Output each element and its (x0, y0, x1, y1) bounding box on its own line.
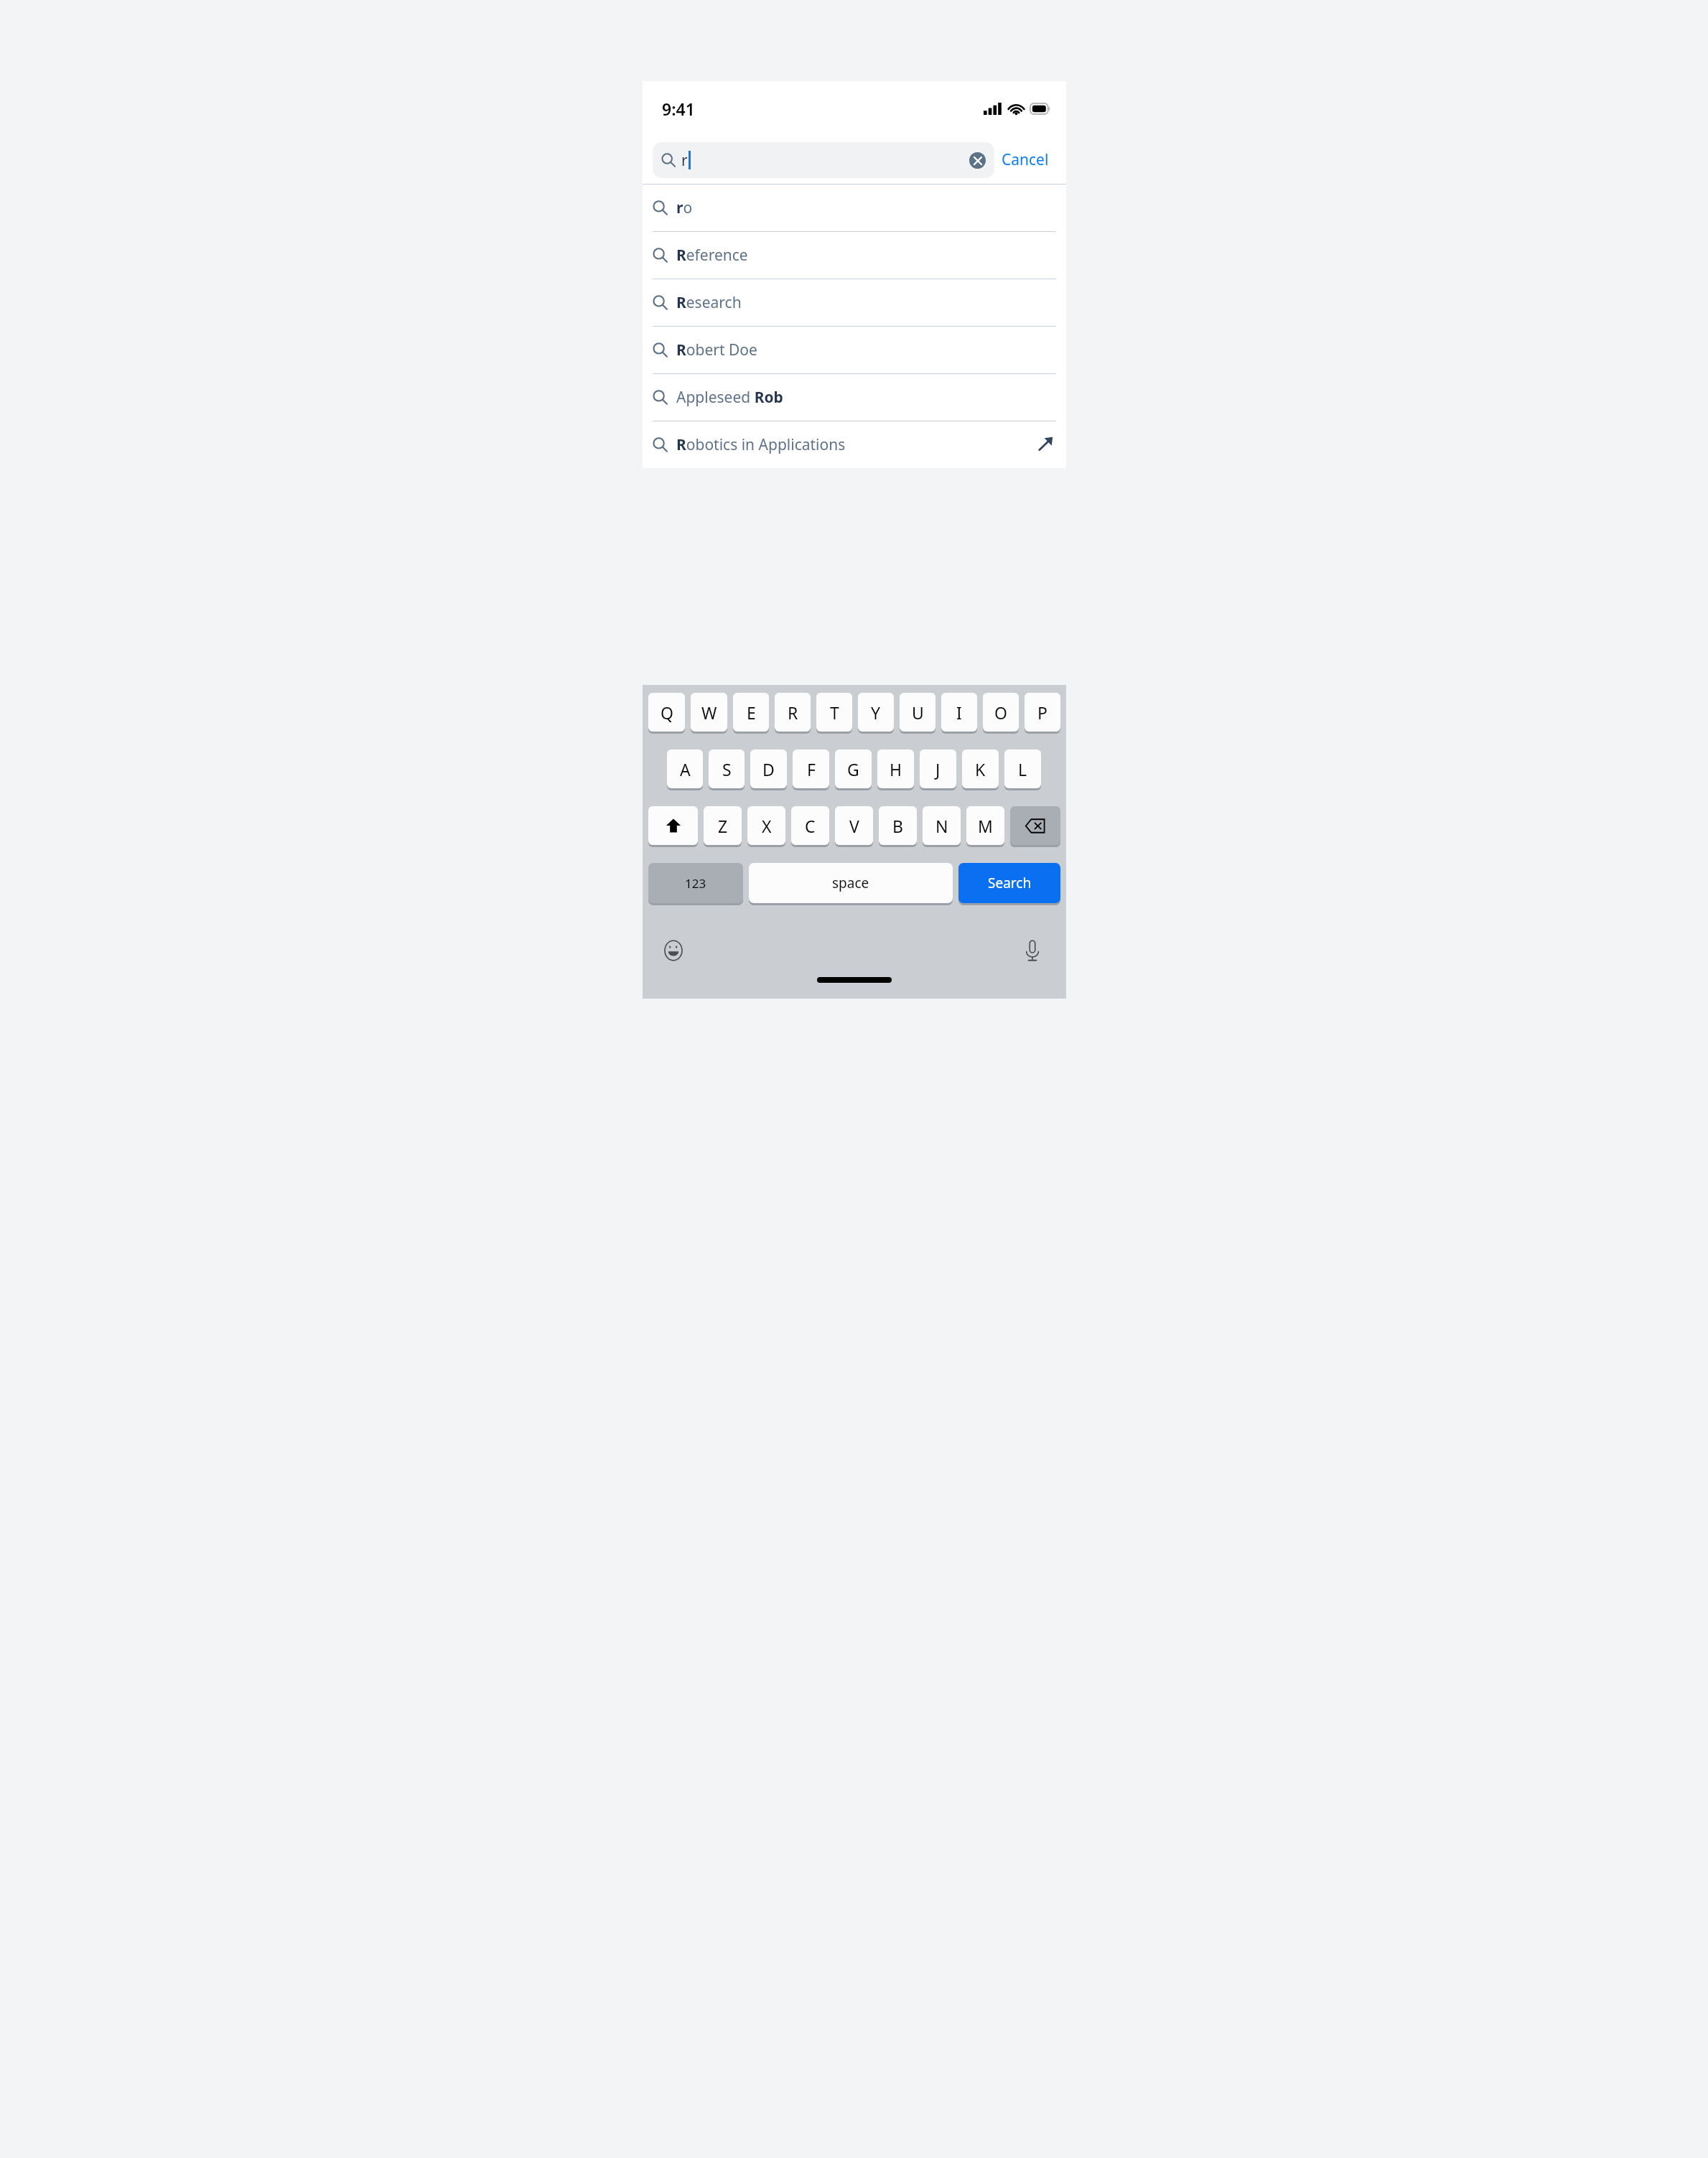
button[interactable]: Z (704, 806, 742, 845)
staticText: C (805, 815, 816, 837)
button[interactable]: E (733, 693, 769, 732)
button[interactable]: Dictate (1019, 937, 1046, 964)
staticText: S (722, 758, 732, 780)
button[interactable]: Research (643, 279, 1066, 326)
button[interactable]: C (791, 806, 829, 845)
staticText: Cancel (1002, 149, 1049, 170)
staticText: Appleseed Rob (676, 387, 783, 408)
button[interactable]: Search (958, 863, 1060, 903)
button[interactable]: O (983, 693, 1019, 732)
button[interactable]: A (667, 749, 703, 788)
button[interactable]: F (793, 749, 829, 788)
button[interactable]: Reference (643, 232, 1066, 279)
button[interactable]: D (750, 749, 787, 788)
staticText: D (762, 758, 775, 780)
staticText: ro (676, 197, 693, 218)
button[interactable]: V (835, 806, 873, 845)
button[interactable]: M (966, 806, 1004, 845)
staticText: Y (871, 701, 881, 724)
staticText: Research (676, 292, 742, 313)
button[interactable]: Q (648, 693, 685, 732)
staticText: Reference (676, 245, 748, 266)
button[interactable]: L (1004, 749, 1041, 788)
staticText: B (892, 815, 903, 837)
staticText: space (832, 874, 869, 892)
button[interactable]: K (962, 749, 999, 788)
button[interactable]: J (920, 749, 956, 788)
button[interactable]: Clear text (969, 152, 986, 169)
button[interactable]: Robert Doe (643, 327, 1066, 373)
button[interactable]: Cancel (994, 145, 1056, 174)
staticText: 9:41 (662, 98, 695, 120)
staticText: H (890, 758, 902, 780)
staticText: X (762, 815, 772, 837)
button[interactable]: X (747, 806, 785, 845)
button[interactable]: S (709, 749, 745, 788)
staticText: A (680, 758, 691, 780)
button[interactable]: space (749, 863, 953, 903)
button[interactable]: B (879, 806, 917, 845)
staticText: K (975, 758, 986, 780)
button[interactable]: Backspace (1010, 806, 1060, 845)
button[interactable]: ro (643, 184, 1066, 231)
staticText: L (1018, 758, 1027, 780)
staticText: Robotics in Applications (676, 434, 846, 455)
button[interactable]: P (1025, 693, 1060, 732)
staticText: Search (988, 874, 1032, 892)
staticText: O (994, 701, 1007, 724)
button[interactable]: W (691, 693, 727, 732)
button[interactable]: T (816, 693, 852, 732)
staticText: 123 (685, 875, 706, 892)
staticText: W (701, 701, 717, 724)
staticText: M (978, 815, 993, 837)
staticText: U (912, 701, 924, 724)
staticText: P (1037, 701, 1047, 724)
staticText: J (935, 758, 941, 780)
staticText: N (935, 815, 948, 837)
button[interactable]: 123 (648, 863, 743, 903)
button[interactable]: r (653, 142, 994, 178)
button[interactable]: Robotics in Applications (643, 421, 1066, 468)
staticText: E (747, 701, 756, 724)
staticText: R (788, 701, 798, 724)
staticText: I (956, 701, 962, 724)
button[interactable]: N (923, 806, 961, 845)
button[interactable]: Emoji (660, 937, 687, 964)
button[interactable]: U (900, 693, 935, 732)
button[interactable]: H (877, 749, 914, 788)
button[interactable]: Shift (648, 806, 698, 845)
staticText: T (830, 701, 839, 724)
staticText: G (847, 758, 859, 780)
staticText: F (807, 758, 816, 780)
staticText: V (849, 815, 859, 837)
button[interactable]: G (835, 749, 872, 788)
button[interactable]: I (941, 693, 977, 732)
button[interactable]: Y (858, 693, 894, 732)
button[interactable]: R (775, 693, 811, 732)
staticText: Z (718, 815, 728, 837)
staticText: Robert Doe (676, 340, 757, 360)
staticText: r (681, 150, 688, 171)
staticText: Q (661, 701, 673, 724)
button[interactable]: Appleseed Rob (643, 374, 1066, 421)
